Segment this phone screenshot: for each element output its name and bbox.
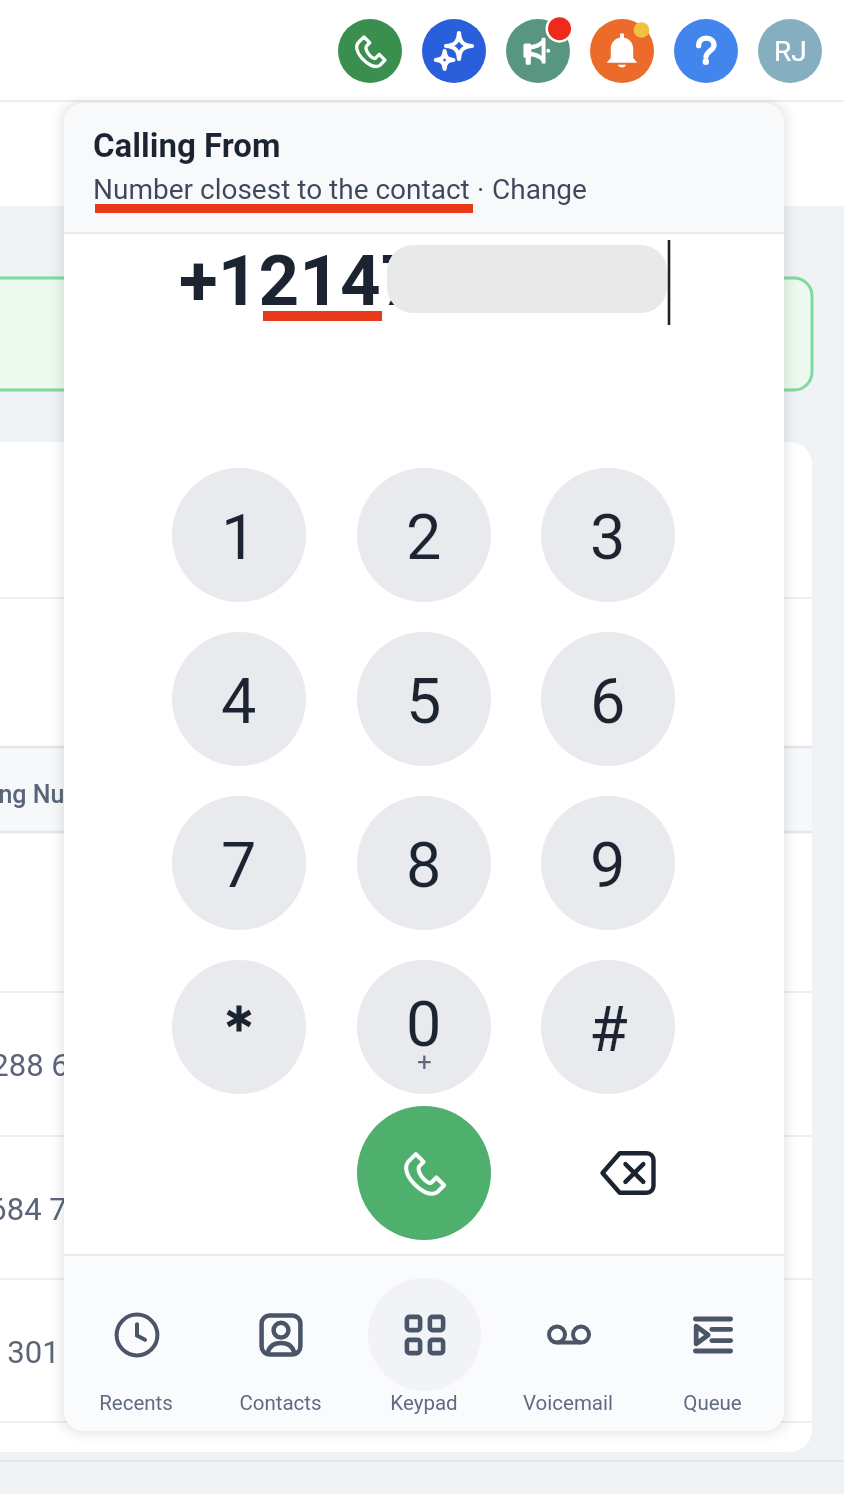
- staticText: +: [417, 1047, 432, 1077]
- button[interactable]: Keypad: [352, 1272, 496, 1424]
- button[interactable]: Change: [492, 173, 587, 206]
- staticText: +12147: [179, 239, 422, 322]
- staticText: 0: [406, 988, 442, 1062]
- staticText: 8: [406, 829, 442, 903]
- staticText: Voicemail: [523, 1391, 613, 1415]
- staticText: 3: [590, 501, 626, 575]
- staticText: 2: [406, 501, 442, 575]
- button[interactable]: Help: [674, 19, 738, 83]
- button[interactable]: [172, 960, 306, 1094]
- button[interactable]: Call: [357, 1106, 491, 1240]
- button[interactable]: Announcements: [506, 19, 570, 83]
- staticText: 5: [406, 665, 442, 739]
- button[interactable]: 1: [172, 468, 306, 602]
- staticText: RJ: [774, 35, 807, 68]
- staticText: Number closest to the contact: [93, 173, 470, 206]
- button[interactable]: Notifications: [590, 19, 654, 83]
- button[interactable]: 5: [357, 632, 491, 766]
- staticText: Keypad: [390, 1391, 458, 1415]
- button[interactable]: Call: [338, 19, 402, 83]
- staticText: (832) 288 6789: [0, 1047, 122, 1083]
- staticText: 6: [590, 665, 626, 739]
- button[interactable]: 9: [541, 796, 675, 930]
- staticText: 9: [590, 829, 626, 903]
- button[interactable]: Backspace: [588, 1133, 668, 1213]
- button[interactable]: 0: [357, 960, 491, 1094]
- button[interactable]: Profile: [758, 19, 822, 83]
- button[interactable]: 8: [357, 796, 491, 930]
- button[interactable]: Queue: [640, 1272, 784, 1424]
- button[interactable]: 3: [541, 468, 675, 602]
- button[interactable]: Number closest to the contact: [93, 173, 470, 206]
- staticText: Incoming Number: [0, 780, 123, 809]
- button[interactable]: 7: [172, 796, 306, 930]
- staticText: Contacts: [239, 1391, 322, 1415]
- staticText: Change: [492, 173, 587, 206]
- button[interactable]: Contacts: [208, 1272, 352, 1424]
- staticText: Calling From: [93, 126, 281, 165]
- button[interactable]: Voicemail: [496, 1272, 640, 1424]
- button[interactable]: Recents: [64, 1272, 208, 1424]
- staticText: 4: [221, 665, 257, 739]
- button[interactable]: #: [541, 960, 675, 1094]
- staticText: (936) 684 7012: [0, 1191, 120, 1227]
- button[interactable]: 2: [357, 468, 491, 602]
- staticText: 7: [221, 829, 257, 903]
- button[interactable]: 4: [172, 632, 306, 766]
- button[interactable]: Assistant: [422, 19, 486, 83]
- staticText: Recents: [99, 1391, 173, 1415]
- staticText: #: [589, 993, 628, 1067]
- staticText: 1: [221, 501, 257, 575]
- staticText: (346) 301 5544: [0, 1334, 138, 1370]
- staticText: ·: [470, 173, 492, 206]
- button[interactable]: 6: [541, 632, 675, 766]
- staticText: Queue: [683, 1391, 742, 1415]
